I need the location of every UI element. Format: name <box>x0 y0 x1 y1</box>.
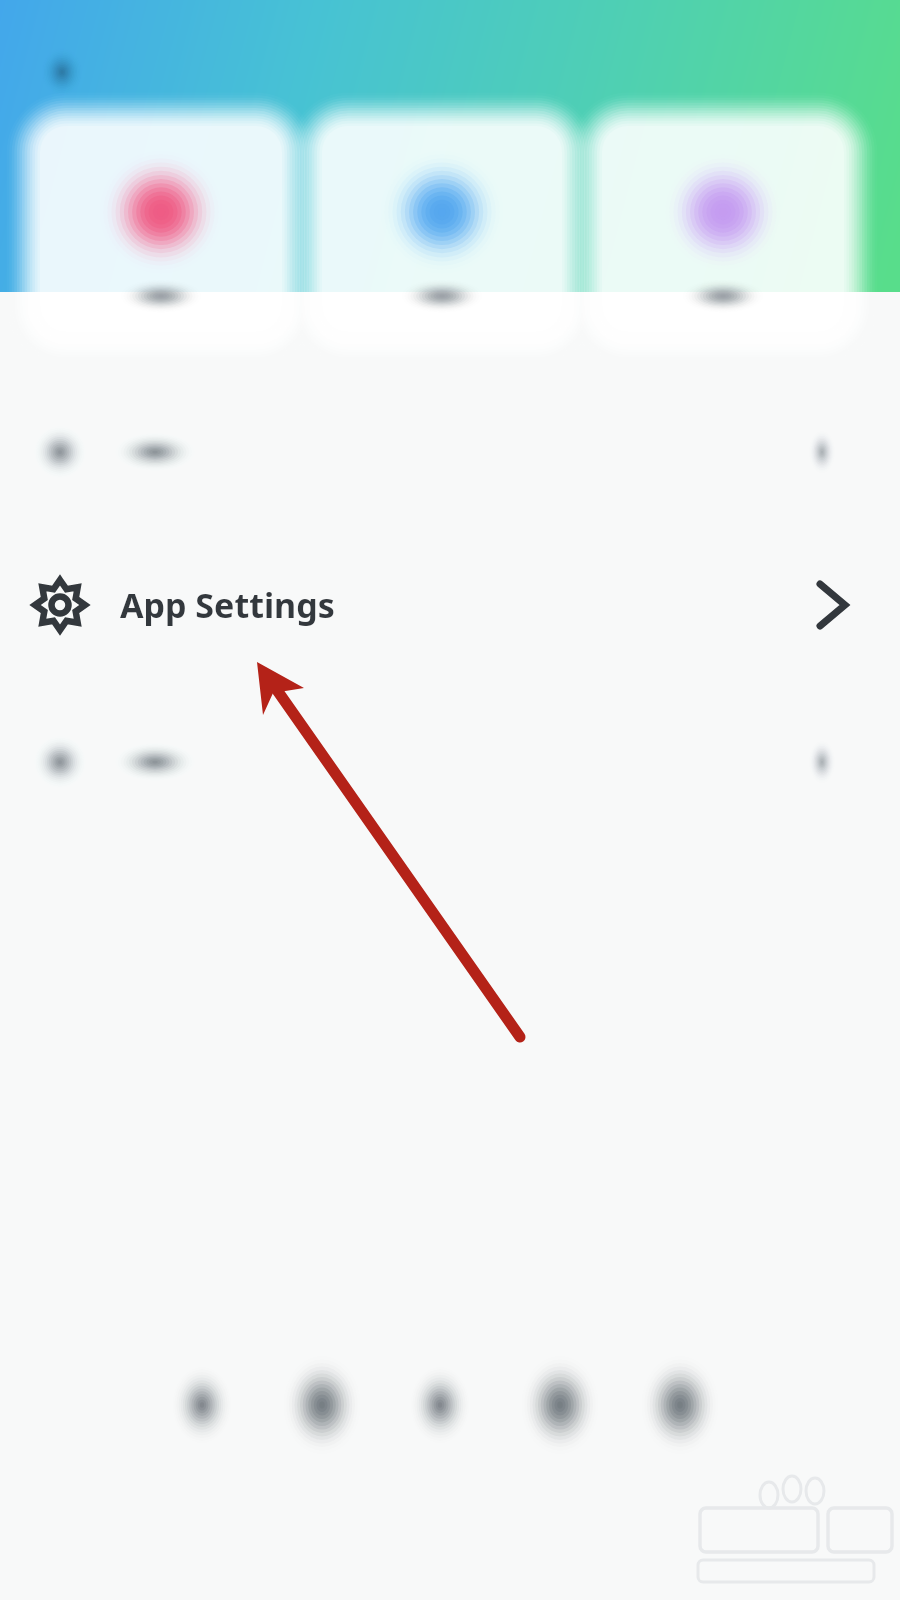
staticText: App Settings <box>120 582 335 628</box>
button[interactable]: App Settings <box>0 550 900 660</box>
